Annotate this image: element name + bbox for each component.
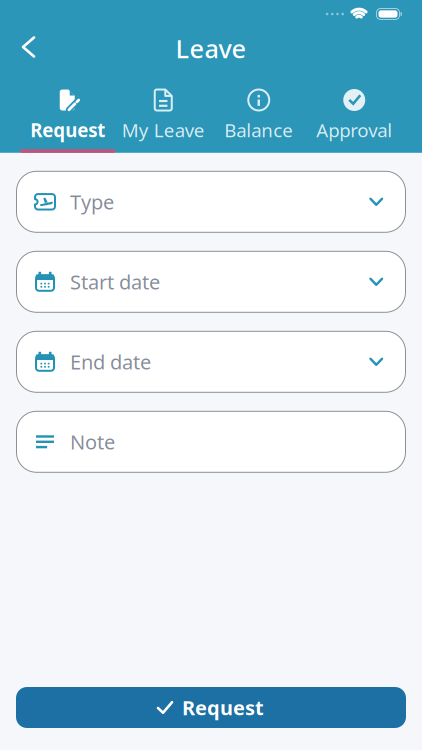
button[interactable]: Approval: [306, 89, 402, 153]
button[interactable]: Request: [20, 89, 115, 153]
staticText: Type: [70, 188, 114, 215]
button[interactable]: End date: [16, 331, 406, 393]
button[interactable]: Request: [16, 687, 406, 728]
staticText: Approval: [316, 117, 392, 142]
button[interactable]: Balance: [211, 89, 306, 153]
staticText: Request: [30, 117, 105, 142]
button[interactable]: Type: [16, 171, 406, 233]
button[interactable]: Start date: [16, 251, 406, 313]
staticText: Note: [70, 428, 115, 455]
button[interactable]: Back: [0, 29, 34, 64]
staticText: Request: [182, 694, 264, 721]
staticText: Leave: [175, 32, 246, 65]
button[interactable]: Note: [16, 411, 406, 473]
staticText: Balance: [224, 117, 293, 142]
staticText: Start date: [70, 268, 160, 295]
button[interactable]: My Leave: [115, 89, 211, 153]
staticText: My Leave: [122, 117, 205, 142]
staticText: End date: [70, 348, 151, 375]
